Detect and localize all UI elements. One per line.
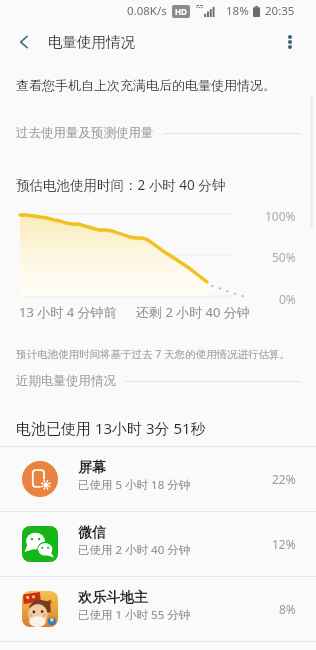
staticText: 电量使用情况 [48,33,135,51]
staticText: 20:35 [265,3,295,19]
staticText: HD [175,6,187,17]
staticText: 12% [272,536,296,552]
button[interactable]: Back [4,22,44,62]
staticText: 100% [265,208,296,224]
staticText: 50% [272,249,296,265]
staticText: 过去使用量及预测使用量 [16,125,154,141]
staticText: 8% [279,601,296,617]
staticText: 22% [272,471,296,487]
button[interactable]: 欢乐斗地主 [0,577,316,641]
staticText: 13 小时 4 分钟前 [19,303,117,321]
staticText: 还剩 2 小时 40 分钟 [136,303,250,321]
button[interactable]: 微信 [0,512,316,576]
staticText: 屏幕 [78,459,106,477]
staticText: 0.08K/s [127,3,167,19]
staticText: 0% [279,291,296,307]
staticText: 查看您手机自上次充满电后的电量使用情况。 [16,77,276,93]
staticText: 欢乐斗地主 [78,589,148,607]
staticText: 电池已使用 13小时 3分 51秒 [16,418,206,438]
staticText: 预估电池使用时间：2 小时 40 分钟 [16,176,226,194]
staticText: 微信 [78,524,106,542]
staticText: 18% [226,3,249,19]
staticText: 预计电池使用时间将基于过去 7 天您的使用情况进行估算。 [16,347,290,361]
staticText: 已使用 2 小时 40 分钟 [78,542,191,558]
button[interactable]: 屏幕 [0,447,316,511]
staticText: 近期电量使用情况 [16,373,116,389]
staticText: 已使用 1 小时 55 分钟 [78,607,191,623]
button[interactable]: More options [270,22,310,62]
staticText: 已使用 5 小时 18 分钟 [78,477,191,493]
